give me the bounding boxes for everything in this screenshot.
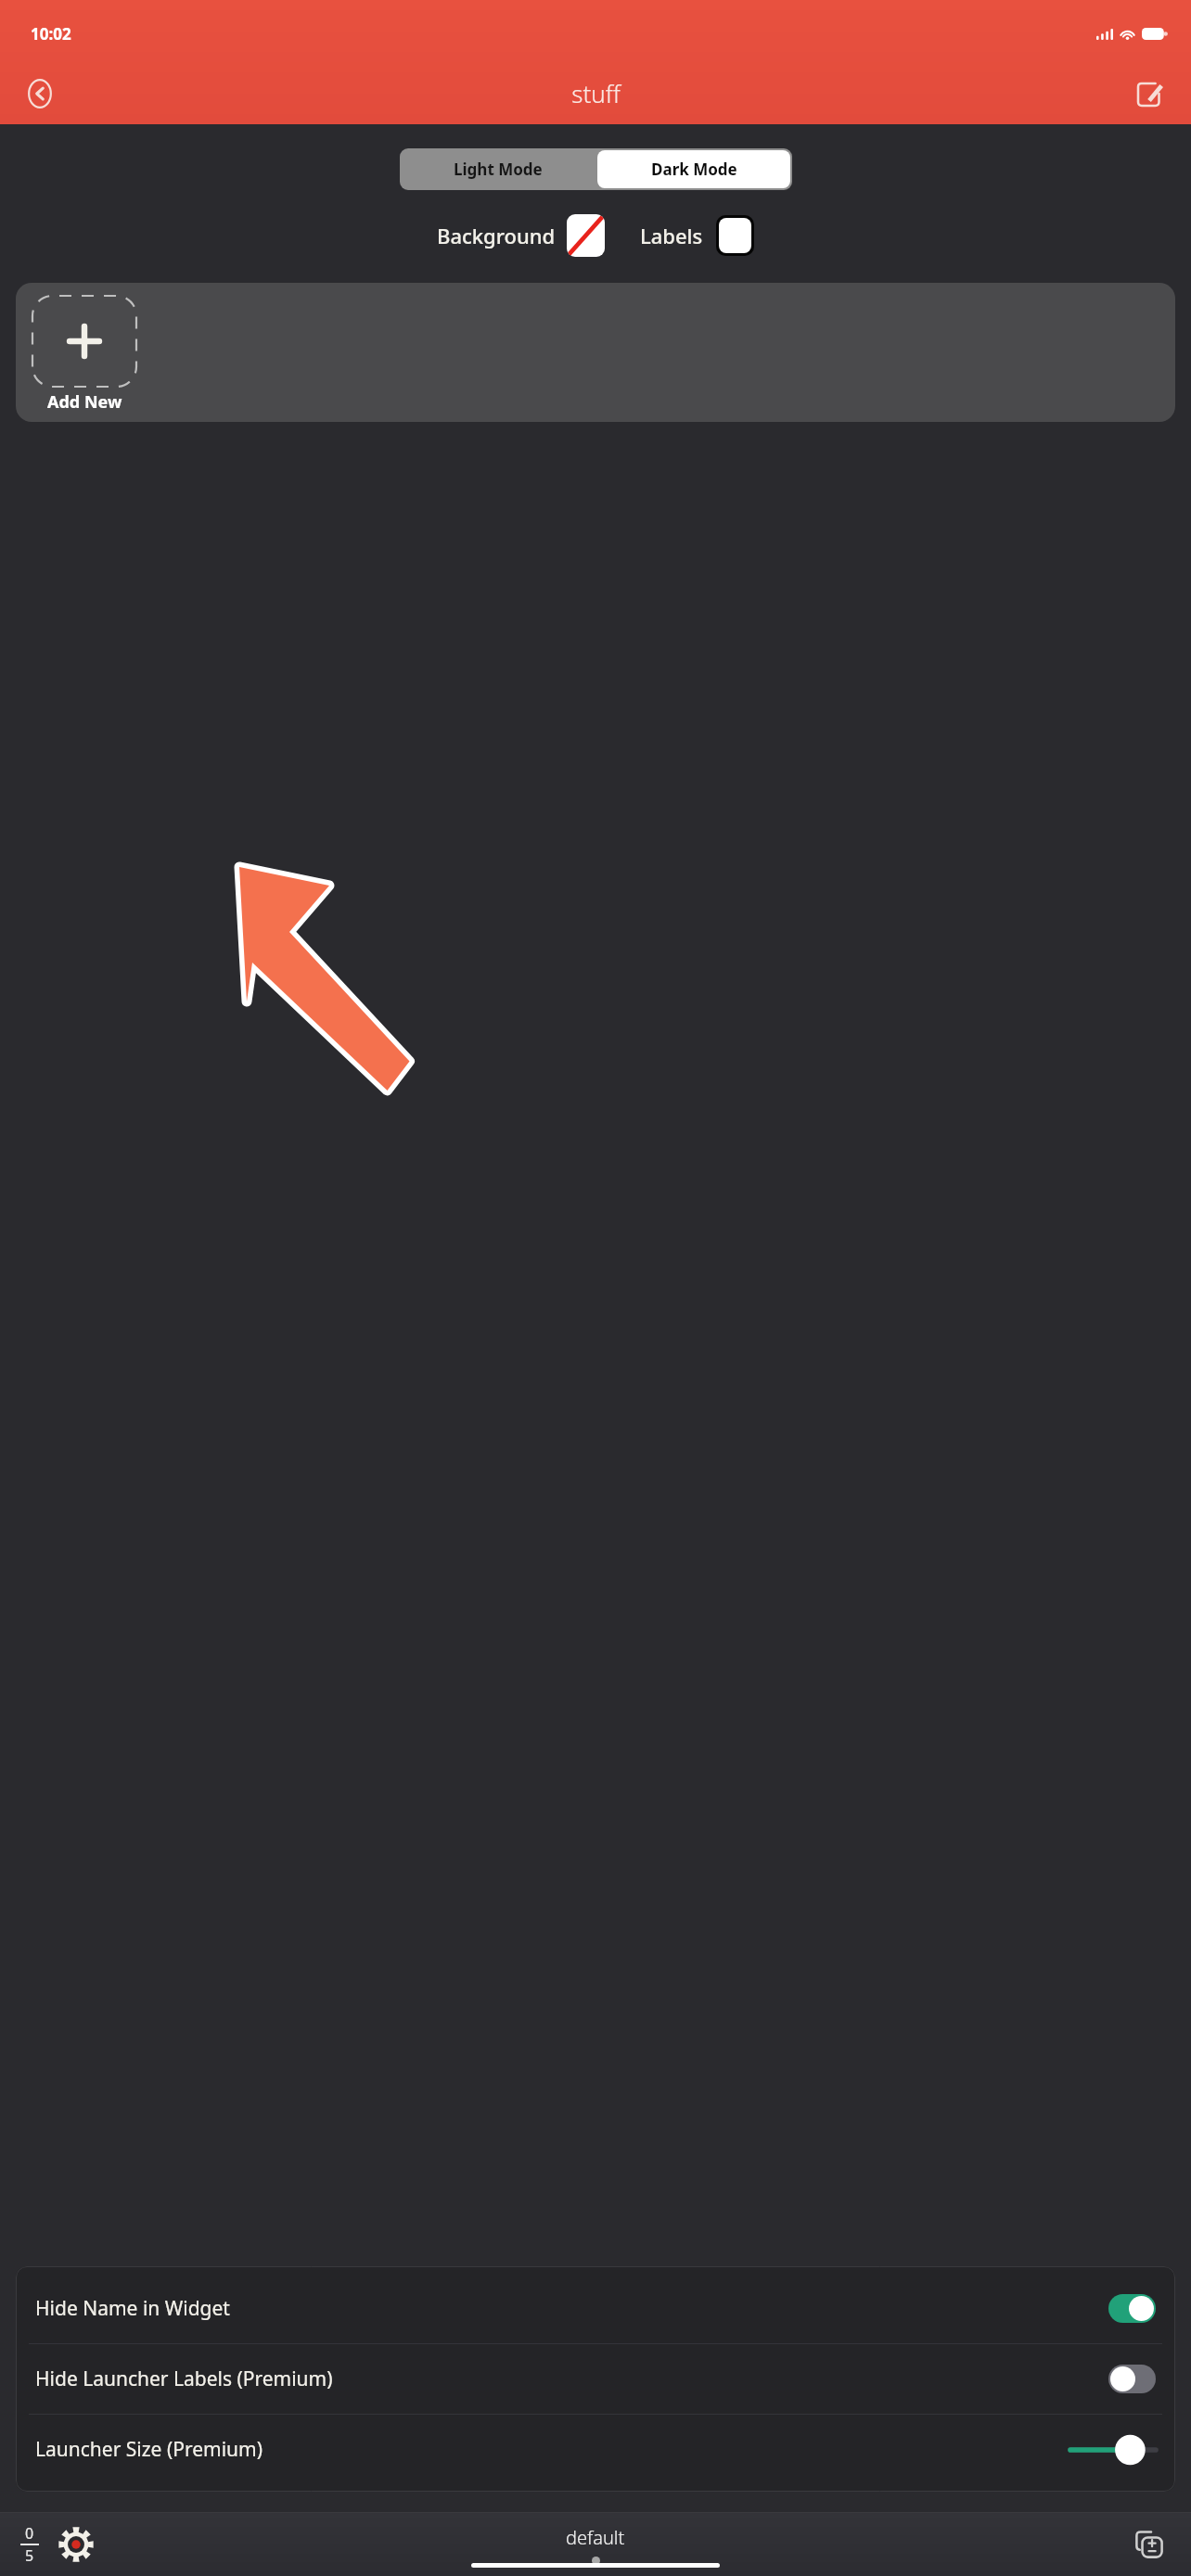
- staticText: Dark Mode: [651, 159, 737, 180]
- staticText: Background: [437, 222, 556, 249]
- staticText: Add New: [47, 390, 122, 414]
- button[interactable]: On: [1108, 2294, 1156, 2323]
- button[interactable]: Launcher size slider: [1070, 2434, 1156, 2466]
- button[interactable]: Settings: [54, 2522, 98, 2567]
- staticText: Light Mode: [454, 159, 543, 180]
- button[interactable]: Background colour: none: [567, 214, 605, 257]
- button[interactable]: Light Mode: [400, 148, 595, 190]
- button[interactable]: Off: [1108, 2365, 1156, 2393]
- button[interactable]: default: [566, 2525, 625, 2565]
- staticText: Launcher Size (Premium): [35, 2436, 1070, 2463]
- button[interactable]: Launcher Size (Premium): [16, 2415, 1175, 2484]
- button[interactable]: Back: [19, 72, 61, 115]
- staticText: Labels: [640, 222, 703, 249]
- staticText: 5: [25, 2545, 34, 2566]
- button[interactable]: Hide Name in Widget: [16, 2274, 1175, 2343]
- button[interactable]: Hide Launcher Labels (Premium): [16, 2344, 1175, 2414]
- staticText: default: [566, 2525, 625, 2550]
- button[interactable]: Dark Mode: [597, 150, 790, 188]
- button[interactable]: Edit: [1128, 72, 1171, 115]
- staticText: Hide Name in Widget: [35, 2295, 1108, 2322]
- button[interactable]: Label colour: white: [719, 218, 751, 253]
- staticText: 10:02: [31, 23, 71, 45]
- staticText: Hide Launcher Labels (Premium): [35, 2366, 1108, 2392]
- button[interactable]: Add New: [32, 296, 136, 414]
- button[interactable]: Duplicate page: [1128, 2523, 1171, 2566]
- staticText: 0: [25, 2523, 34, 2544]
- staticText: stuff: [571, 77, 621, 109]
